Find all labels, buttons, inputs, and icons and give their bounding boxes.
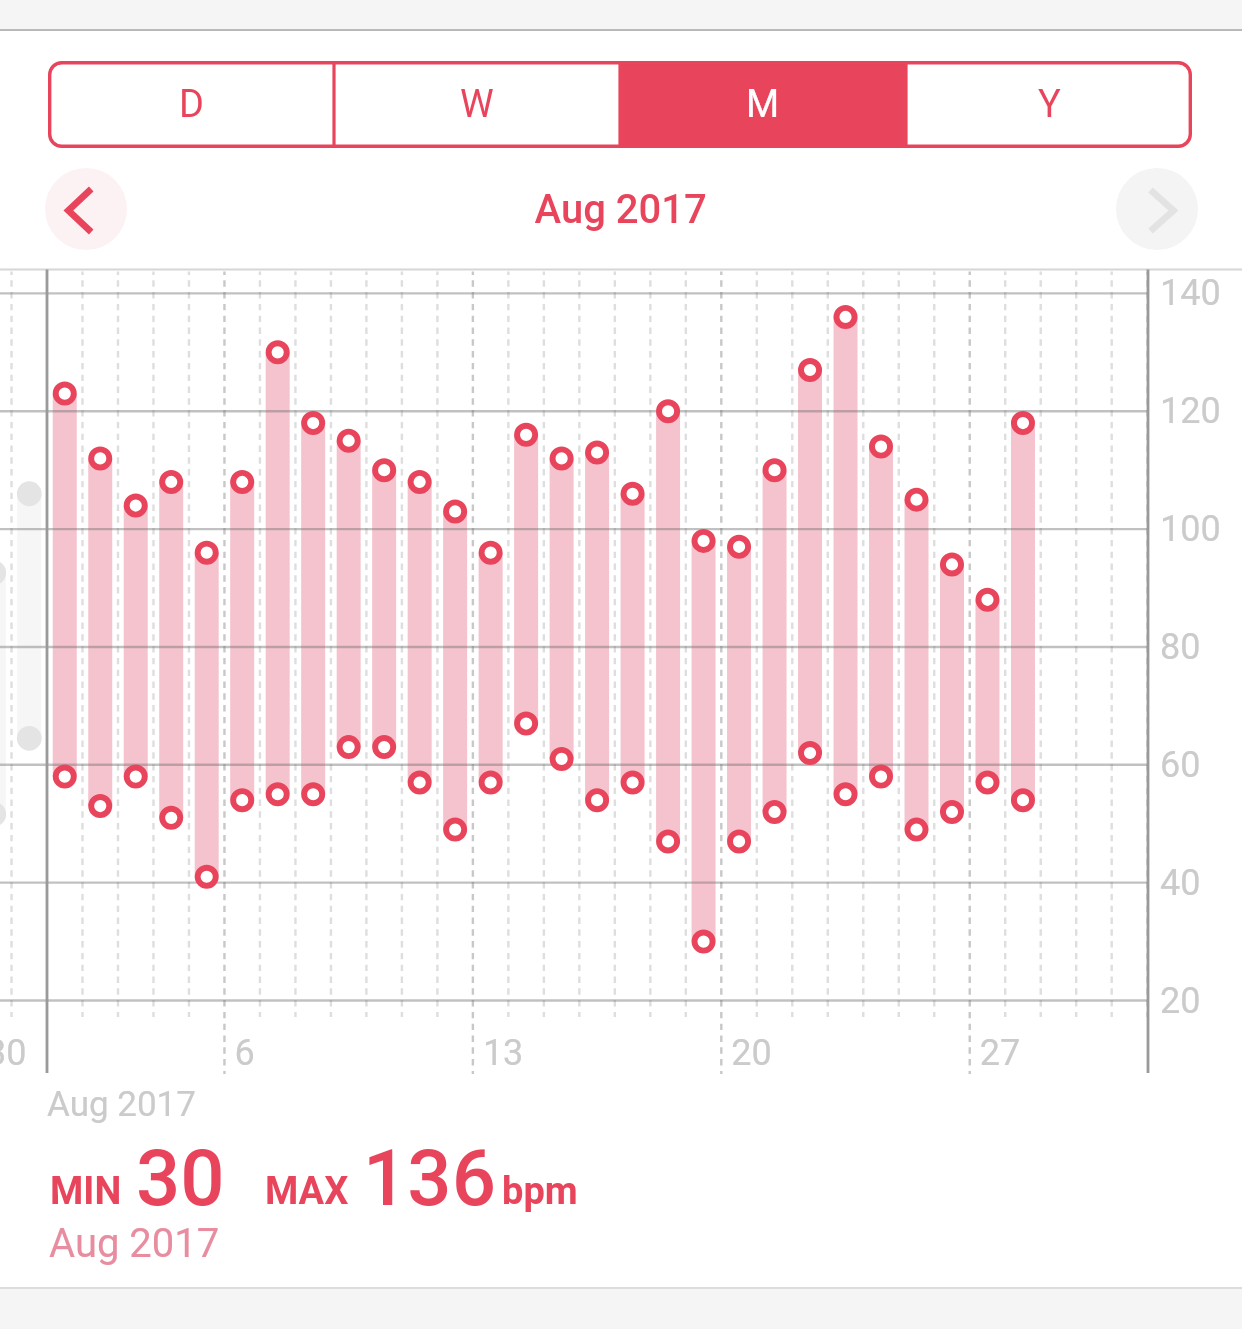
button[interactable]: W [334, 61, 620, 148]
button[interactable]: M [620, 61, 906, 148]
button[interactable]: Y [906, 61, 1192, 148]
staticText: Y [1038, 82, 1061, 127]
staticText: D [179, 82, 204, 127]
staticText: W [460, 82, 494, 127]
button[interactable]: D [48, 61, 334, 148]
button[interactable]: Previous month [45, 168, 127, 250]
button[interactable]: Next month [1116, 168, 1198, 250]
staticText: M [746, 82, 780, 127]
